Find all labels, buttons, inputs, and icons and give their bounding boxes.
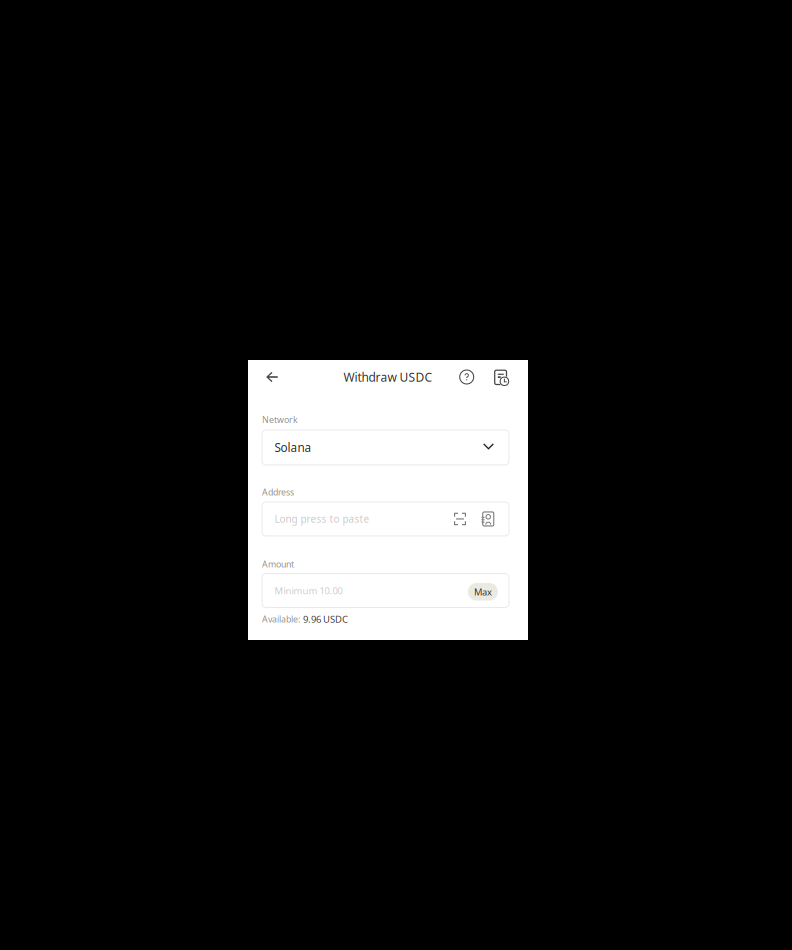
staticText: Long press to paste xyxy=(274,512,369,526)
staticText: Address xyxy=(262,486,294,498)
staticText: Max xyxy=(474,585,492,598)
staticText: Withdraw USDC xyxy=(343,369,432,385)
button[interactable]: Transaction history xyxy=(495,364,509,390)
button[interactable]: Solana xyxy=(262,430,509,465)
button[interactable]: Max xyxy=(466,582,496,599)
staticText: Solana xyxy=(274,439,311,455)
button[interactable]: Back xyxy=(259,364,285,390)
staticText: Minimum 10.00 xyxy=(274,584,342,597)
staticText: 9.96 USDC xyxy=(303,613,348,625)
staticText: Available: xyxy=(262,613,300,625)
button[interactable]: Choose from address book xyxy=(481,510,494,528)
staticText: Amount xyxy=(262,558,294,570)
button[interactable]: Scan QR code xyxy=(454,510,466,528)
button[interactable]: Help xyxy=(460,364,474,390)
staticText: Network xyxy=(262,414,298,426)
